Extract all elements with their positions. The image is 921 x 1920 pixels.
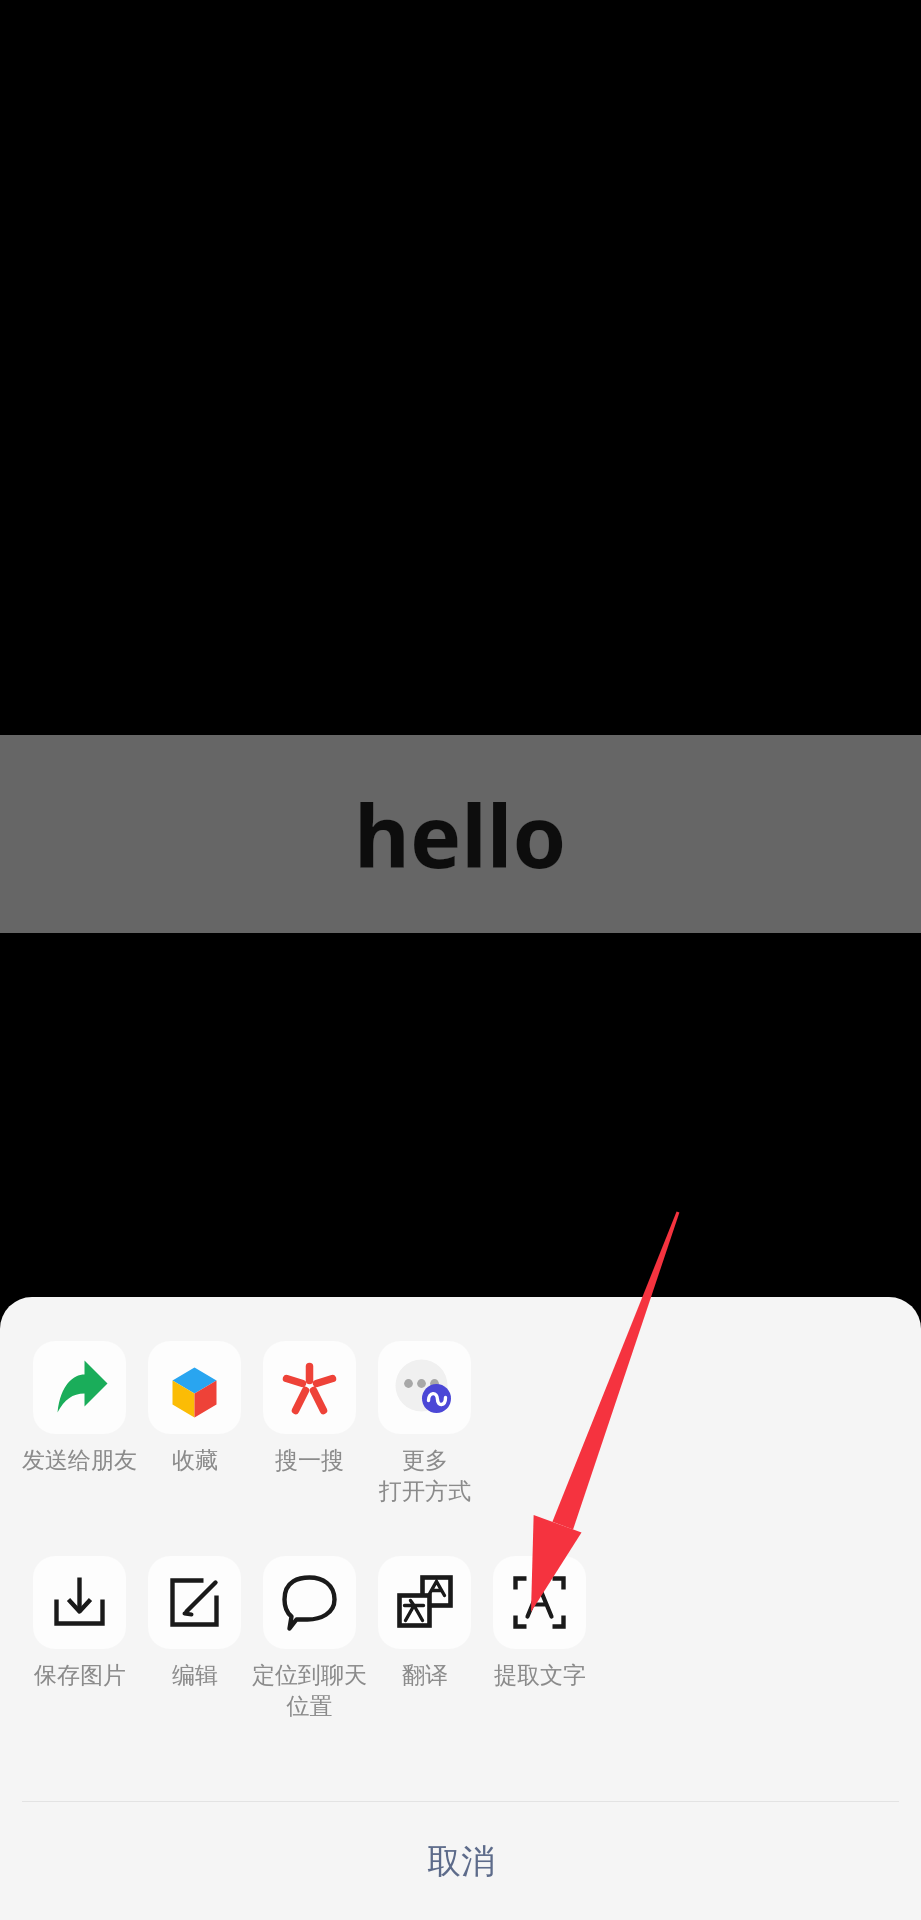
button[interactable]: 更多打开方式 — [367, 1341, 482, 1506]
staticText: 保存图片 — [34, 1661, 126, 1690]
staticText: 搜一搜 — [275, 1446, 344, 1475]
staticText: 翻译 — [402, 1661, 448, 1690]
button[interactable]: 取消 — [0, 1802, 921, 1920]
staticText: 提取文字 — [494, 1661, 586, 1690]
staticText: 编辑 — [172, 1661, 218, 1690]
button[interactable]: 收藏 — [137, 1341, 252, 1475]
button[interactable]: 发送给朋友 — [22, 1341, 137, 1475]
button[interactable]: 提取文字 — [482, 1556, 597, 1690]
button[interactable]: 保存图片 — [22, 1556, 137, 1690]
staticText: 发送给朋友 — [22, 1446, 137, 1475]
staticText: 收藏 — [172, 1446, 218, 1475]
button[interactable]: 定位到聊天位置 — [252, 1556, 367, 1721]
button[interactable]: 翻译 — [367, 1556, 482, 1690]
staticText: hello — [354, 776, 567, 893]
staticText: 更多 打开方式 — [379, 1446, 471, 1506]
button[interactable]: 搜一搜 — [252, 1341, 367, 1475]
staticText: 取消 — [427, 1840, 495, 1883]
staticText: 定位到聊天 位置 — [252, 1661, 367, 1721]
button[interactable]: 编辑 — [137, 1556, 252, 1690]
